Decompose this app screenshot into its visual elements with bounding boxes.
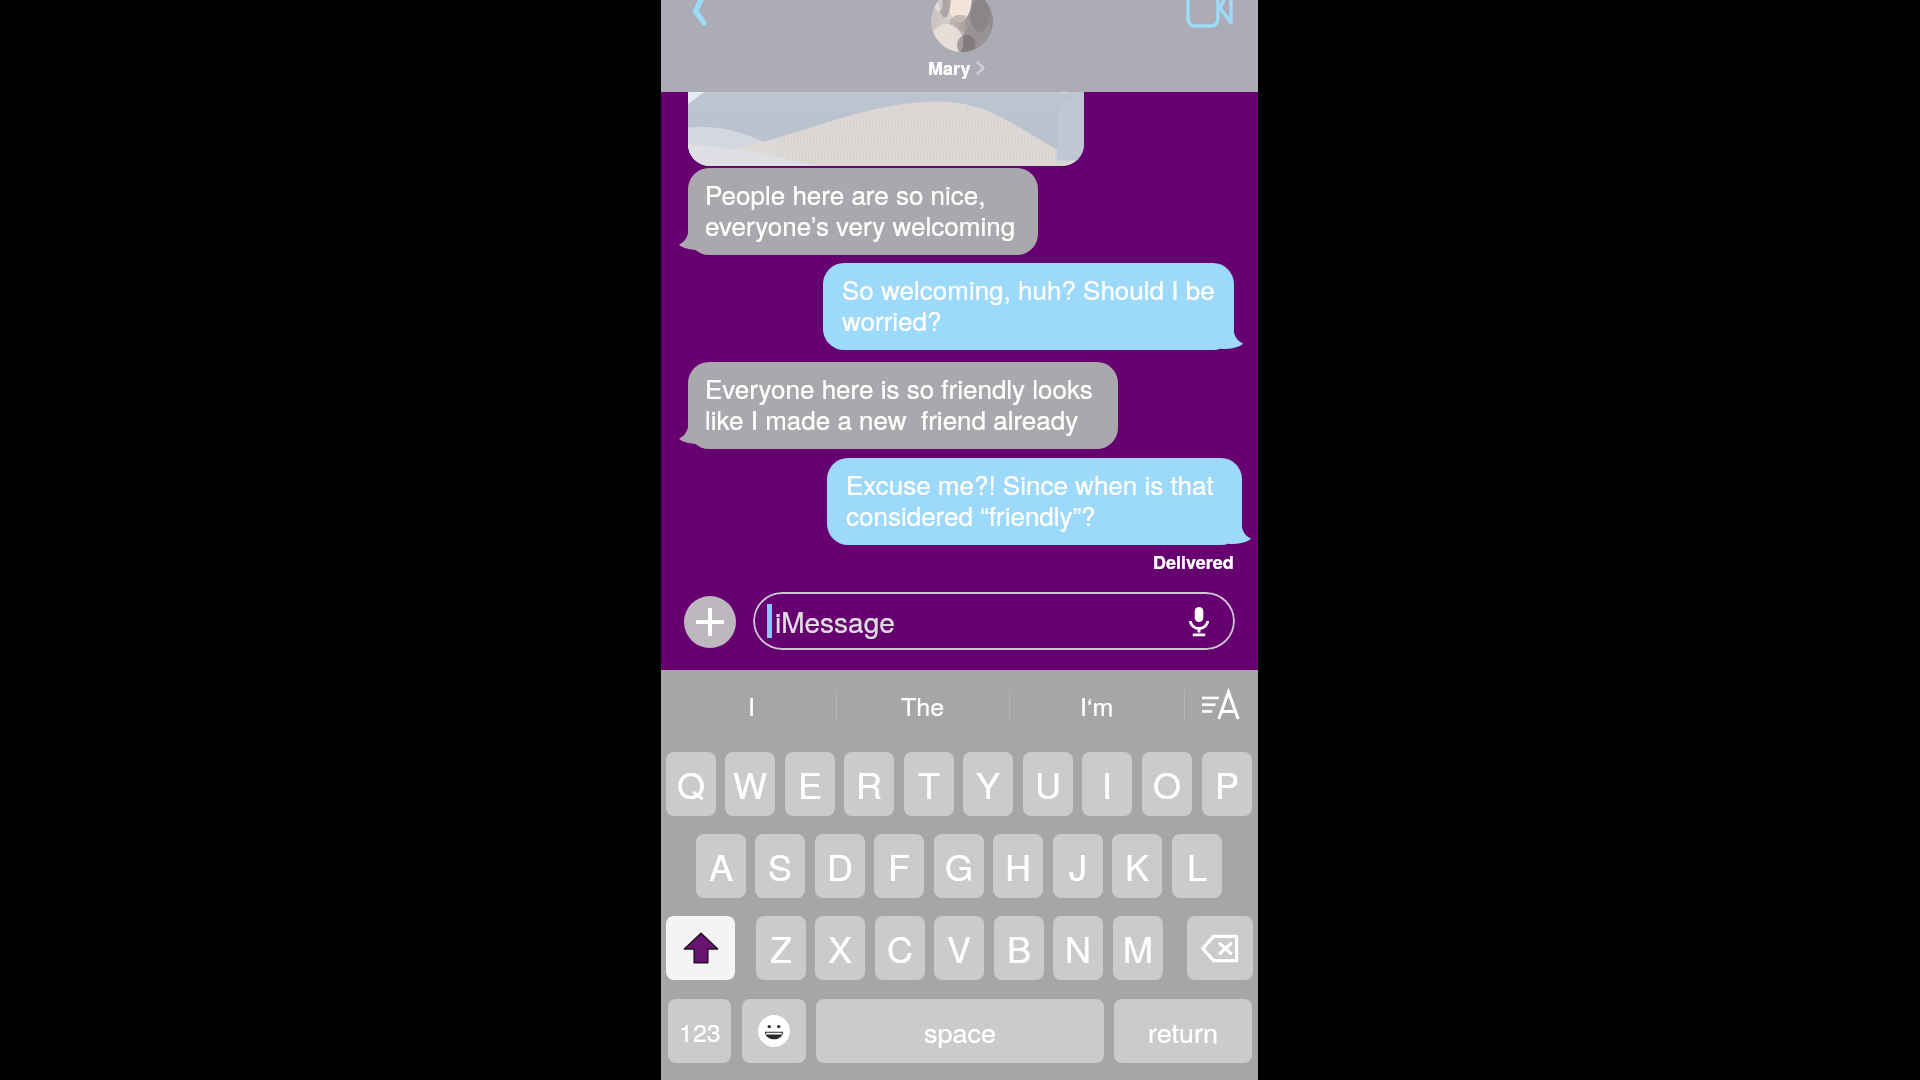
button[interactable]: Z <box>756 916 806 980</box>
staticText: K <box>1125 840 1150 892</box>
staticText: Everyone here is so friendly looks like … <box>705 369 1093 437</box>
button[interactable]: The <box>836 670 1009 740</box>
staticText: E <box>798 758 823 810</box>
button[interactable]: Shift <box>666 916 735 980</box>
staticText: P <box>1215 758 1240 810</box>
button[interactable]: P <box>1202 752 1252 816</box>
button[interactable]: I‘m <box>1009 670 1184 740</box>
staticText: C <box>887 922 913 974</box>
button[interactable]: C <box>875 916 925 980</box>
button[interactable]: Emoji <box>742 999 806 1063</box>
staticText: N <box>1065 922 1091 974</box>
staticText: Q <box>677 758 706 810</box>
button[interactable]: N <box>1053 916 1103 980</box>
button[interactable]: iMessage text field <box>753 592 1235 650</box>
staticText: So welcoming, huh? Should I be worried? <box>842 270 1215 338</box>
button[interactable]: 123 <box>668 999 731 1063</box>
staticText: Mary <box>928 55 971 81</box>
button[interactable]: Excuse me?! Since when is that considere… <box>827 458 1242 545</box>
button[interactable]: W <box>725 752 775 816</box>
staticText: A <box>709 840 734 892</box>
button[interactable]: H <box>993 834 1043 898</box>
staticText: B <box>1007 922 1032 974</box>
button[interactable]: return <box>1114 999 1252 1063</box>
staticText: S <box>768 840 793 892</box>
staticText: X <box>828 922 853 974</box>
button[interactable]: E <box>785 752 835 816</box>
button[interactable]: T <box>904 752 954 816</box>
button[interactable]: O <box>1142 752 1192 816</box>
staticText: T <box>918 758 940 810</box>
button[interactable]: People here are so nice, everyone’s very… <box>688 168 1038 255</box>
button[interactable]: F <box>874 834 924 898</box>
staticText: return <box>1148 1012 1218 1051</box>
staticText: R <box>856 758 882 810</box>
staticText: D <box>827 840 853 892</box>
button[interactable]: Text formatting <box>1184 670 1258 740</box>
staticText: Excuse me?! Since when is that considere… <box>846 465 1214 533</box>
staticText: I <box>1102 758 1113 810</box>
button[interactable]: Back <box>680 0 724 40</box>
button[interactable]: J <box>1053 834 1103 898</box>
staticText: Z <box>770 922 792 974</box>
button[interactable]: K <box>1112 834 1162 898</box>
staticText: L <box>1187 840 1208 892</box>
button[interactable]: V <box>934 916 984 980</box>
staticText: W <box>733 758 767 810</box>
button[interactable]: So welcoming, huh? Should I be worried? <box>823 263 1234 350</box>
button[interactable]: space <box>816 999 1104 1063</box>
staticText: I <box>748 687 755 723</box>
staticText: V <box>947 922 972 974</box>
staticText: Y <box>976 758 1001 810</box>
button[interactable]: M <box>1113 916 1163 980</box>
staticText: J <box>1069 840 1087 892</box>
button[interactable]: A <box>696 834 746 898</box>
staticText: U <box>1035 758 1061 810</box>
staticText: People here are so nice, everyone’s very… <box>705 175 1016 243</box>
staticText: iMessage <box>775 601 895 641</box>
button[interactable]: Photo attachment <box>688 55 1084 166</box>
button[interactable]: Delete <box>1187 916 1253 980</box>
button[interactable]: S <box>755 834 805 898</box>
button[interactable]: D <box>815 834 865 898</box>
button[interactable]: I <box>666 670 836 740</box>
button[interactable]: Everyone here is so friendly looks like … <box>688 362 1118 449</box>
staticText: H <box>1005 840 1031 892</box>
button[interactable]: Y <box>963 752 1013 816</box>
staticText: F <box>888 840 910 892</box>
button[interactable]: Q <box>666 752 716 816</box>
staticText: 123 <box>679 1013 721 1049</box>
other: Dictate <box>1187 607 1211 636</box>
button[interactable]: G <box>934 834 984 898</box>
button[interactable]: U <box>1023 752 1073 816</box>
staticText: space <box>924 1012 997 1051</box>
button[interactable]: I <box>1082 752 1132 816</box>
staticText: O <box>1153 758 1182 810</box>
button[interactable]: B <box>994 916 1044 980</box>
button[interactable]: L <box>1172 834 1222 898</box>
button[interactable]: R <box>844 752 894 816</box>
staticText: The <box>901 687 945 723</box>
button[interactable]: Add attachment <box>684 596 736 648</box>
button[interactable]: X <box>815 916 865 980</box>
staticText: G <box>945 840 974 892</box>
staticText: Delivered <box>1153 549 1234 575</box>
staticText: I‘m <box>1080 687 1114 723</box>
staticText: M <box>1123 922 1153 974</box>
button[interactable]: FaceTime video call <box>1180 0 1238 34</box>
button[interactable]: Contact photo <box>931 0 993 52</box>
